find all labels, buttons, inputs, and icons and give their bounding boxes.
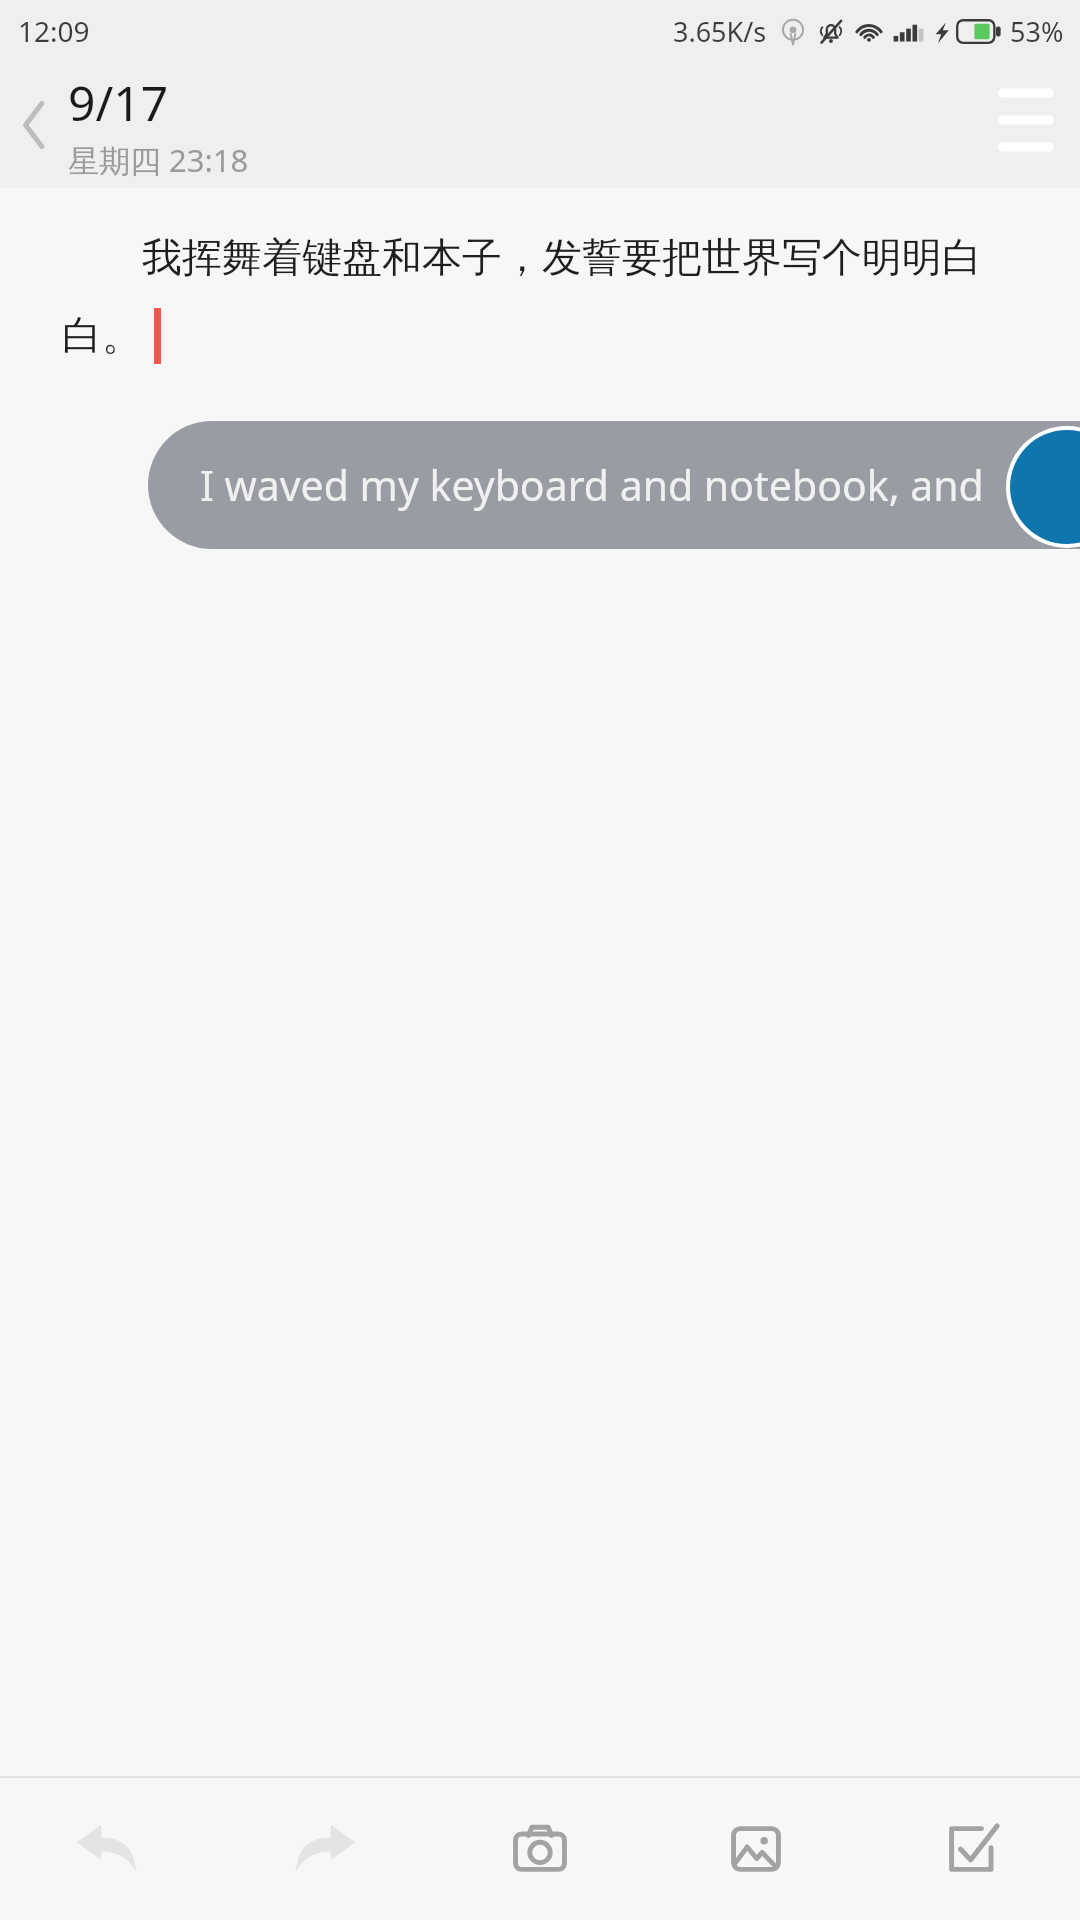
button[interactable]: I waved my keyboard and notebook, and xyxy=(148,421,1080,549)
button[interactable]: Insert image xyxy=(648,1778,864,1920)
staticText: 3.65K/s xyxy=(673,13,767,50)
staticText: I waved my keyboard and notebook, and xyxy=(200,457,984,513)
staticText: 9/17 xyxy=(68,70,169,135)
staticText: 53% xyxy=(1010,13,1064,50)
button[interactable]: Camera xyxy=(432,1778,648,1920)
button[interactable]: Checklist xyxy=(864,1778,1080,1920)
button[interactable]: Translate xyxy=(1010,430,1080,544)
staticText: 12:09 xyxy=(18,12,90,50)
button[interactable]: Undo xyxy=(0,1778,216,1920)
other: Back xyxy=(20,98,48,152)
button[interactable]: Redo xyxy=(216,1778,432,1920)
button[interactable]: Back xyxy=(0,62,265,188)
staticText: 星期四 23:18 xyxy=(68,139,249,180)
staticText: 我挥舞着键盘和本子，发誓要把世界写个明明白白。 xyxy=(62,228,1018,361)
button[interactable]: Menu xyxy=(972,71,1080,169)
